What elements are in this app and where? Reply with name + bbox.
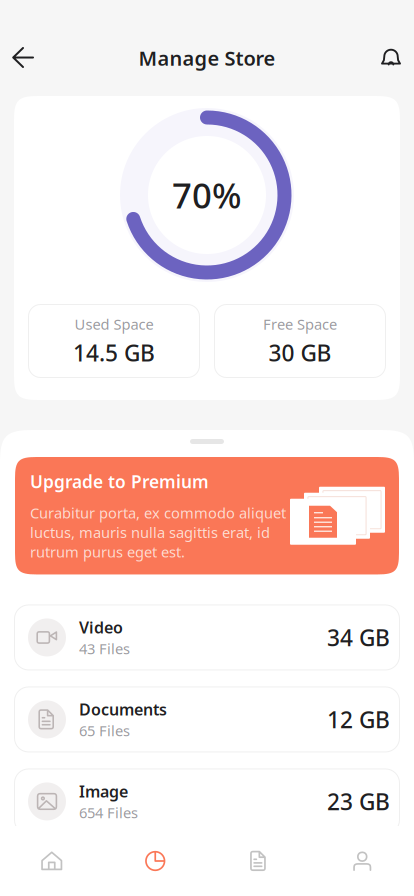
button[interactable]: Files bbox=[207, 826, 310, 896]
button[interactable]: Notifications bbox=[368, 35, 414, 81]
staticText: Upgrade to Premium bbox=[30, 470, 209, 493]
staticText: 23 GB bbox=[327, 786, 390, 816]
staticText: Free Space bbox=[263, 314, 337, 334]
staticText: 65 Files bbox=[79, 721, 130, 740]
staticText: Video bbox=[79, 617, 123, 638]
button[interactable]: Image bbox=[14, 768, 400, 834]
staticText: Used Space bbox=[74, 314, 153, 334]
staticText: Image bbox=[79, 781, 128, 802]
button[interactable]: Documents bbox=[14, 686, 400, 752]
staticText: 34 GB bbox=[327, 622, 390, 652]
button[interactable]: Storage bbox=[103, 826, 207, 896]
button[interactable]: Home bbox=[0, 826, 103, 896]
staticText: 654 Files bbox=[79, 803, 138, 822]
button[interactable]: Back bbox=[0, 35, 46, 81]
staticText: Curabitur porta, ex commodo aliquet luct… bbox=[30, 503, 286, 561]
staticText: 12 GB bbox=[327, 704, 390, 734]
staticText: 14.5 GB bbox=[73, 338, 155, 368]
staticText: Documents bbox=[79, 699, 167, 720]
button[interactable]: Video bbox=[14, 604, 400, 670]
staticText: Manage Store bbox=[138, 45, 275, 71]
staticText: 30 GB bbox=[268, 338, 331, 368]
staticText: 43 Files bbox=[79, 639, 130, 658]
staticText: 70% bbox=[172, 172, 242, 218]
button[interactable]: Profile bbox=[310, 826, 414, 896]
button[interactable]: Upgrade to Premium bbox=[15, 457, 399, 574]
